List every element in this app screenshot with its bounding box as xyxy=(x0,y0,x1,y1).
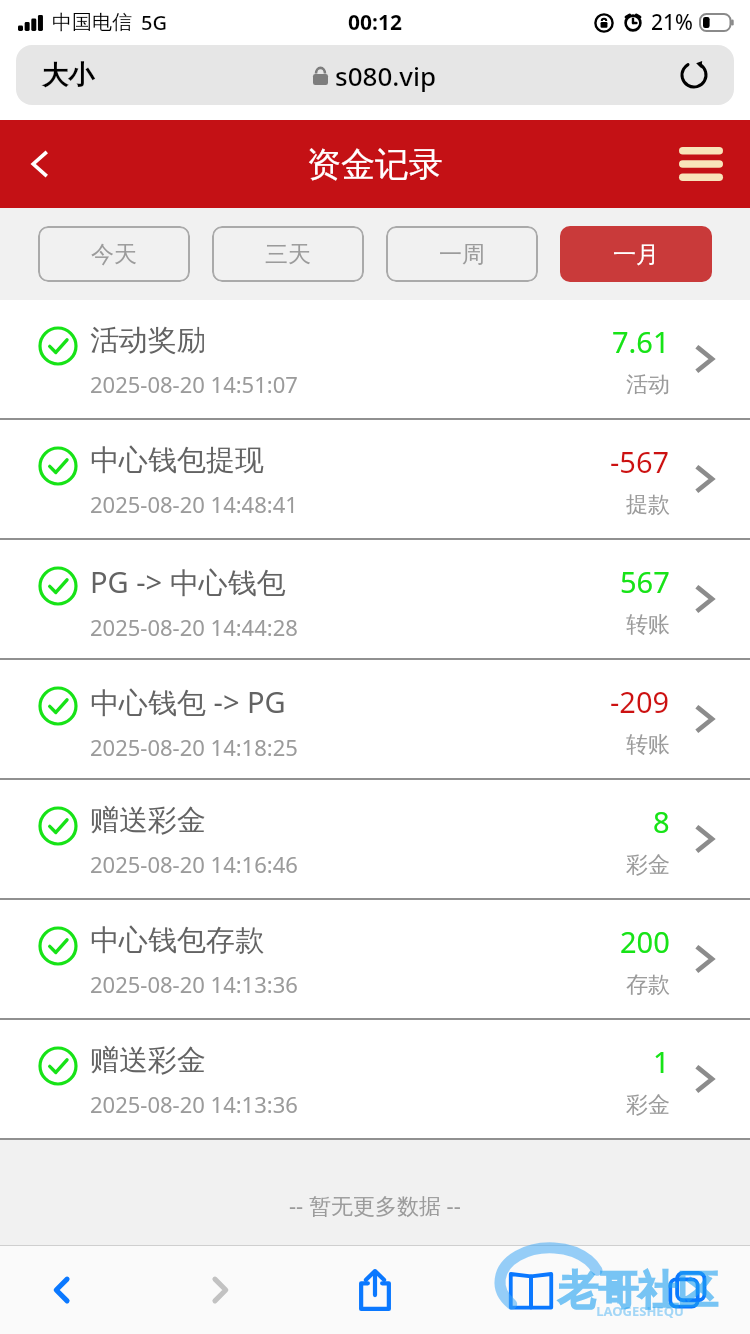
button[interactable]: 一周 xyxy=(386,226,538,282)
staticText: 今天 xyxy=(91,240,137,269)
staticText: 2025-08-20 14:13:36 xyxy=(90,969,298,999)
staticText: 中心钱包提现 xyxy=(90,442,264,479)
staticText: 赠送彩金 xyxy=(90,1042,206,1079)
button[interactable]: 中心钱包存款 xyxy=(0,900,750,1018)
button[interactable]: 活动奖励 xyxy=(0,300,750,418)
staticText: 一周 xyxy=(439,240,485,269)
staticText: 大小 xyxy=(42,59,94,92)
button[interactable]: 中心钱包提现 xyxy=(0,420,750,538)
button[interactable]: PG -> 中心钱包 xyxy=(0,540,750,658)
staticText: -209 xyxy=(610,682,670,721)
button[interactable]: Menu xyxy=(670,133,732,195)
staticText: 赠送彩金 xyxy=(90,802,206,839)
staticText: 7.61 xyxy=(612,322,670,361)
staticText: 21% xyxy=(651,8,693,37)
staticText: 2025-08-20 14:48:41 xyxy=(90,489,298,519)
button[interactable]: Bookmarks xyxy=(494,1253,568,1327)
staticText: 提款 xyxy=(626,491,670,519)
staticText: 2025-08-20 14:18:25 xyxy=(90,732,298,762)
button[interactable]: Back xyxy=(26,1253,100,1327)
button[interactable]: 赠送彩金 xyxy=(0,1020,750,1138)
button[interactable]: 大小 xyxy=(16,45,734,105)
staticText: 2025-08-20 14:16:46 xyxy=(90,849,298,879)
button[interactable]: 一月 xyxy=(560,226,712,282)
button[interactable]: Reload xyxy=(672,53,716,97)
staticText: 彩金 xyxy=(626,851,670,879)
staticText: -567 xyxy=(610,442,670,481)
staticText: 转账 xyxy=(626,731,670,759)
staticText: 2025-08-20 14:13:36 xyxy=(90,1089,298,1119)
staticText: 资金记录 xyxy=(307,143,443,186)
staticText: -- 暂无更多数据 -- xyxy=(289,1190,461,1220)
staticText: 中心钱包 -> PG xyxy=(90,682,286,722)
button[interactable]: 中心钱包 -> PG xyxy=(0,660,750,778)
button[interactable]: 三天 xyxy=(212,226,364,282)
staticText: 一月 xyxy=(613,240,659,269)
staticText: s080.vip xyxy=(335,58,437,93)
button[interactable]: 赠送彩金 xyxy=(0,780,750,898)
button[interactable]: 今天 xyxy=(38,226,190,282)
staticText: 2025-08-20 14:51:07 xyxy=(90,369,298,399)
staticText: 彩金 xyxy=(626,1091,670,1119)
staticText: 老哥社区 xyxy=(558,1265,718,1315)
button[interactable]: Back xyxy=(8,132,72,196)
staticText: 2025-08-20 14:44:28 xyxy=(90,612,298,642)
staticText: 中心钱包存款 xyxy=(90,922,264,959)
button[interactable]: Forward xyxy=(182,1253,256,1327)
staticText: 200 xyxy=(620,922,670,961)
staticText: 活动 xyxy=(626,371,670,399)
staticText: 转账 xyxy=(626,611,670,639)
staticText: 中国电信 xyxy=(52,10,132,35)
staticText: PG -> 中心钱包 xyxy=(90,562,286,602)
button[interactable]: Tabs xyxy=(650,1253,724,1327)
staticText: 1 xyxy=(653,1042,670,1081)
staticText: 存款 xyxy=(626,971,670,999)
staticText: 00:12 xyxy=(348,8,402,37)
staticText: 活动奖励 xyxy=(90,322,206,359)
staticText: 5G xyxy=(141,9,167,36)
staticText: 567 xyxy=(620,562,670,601)
staticText: 三天 xyxy=(265,240,311,269)
staticText: LAOGESHEQU xyxy=(596,1302,684,1320)
button[interactable]: Share xyxy=(338,1253,412,1327)
staticText: 8 xyxy=(653,802,670,841)
